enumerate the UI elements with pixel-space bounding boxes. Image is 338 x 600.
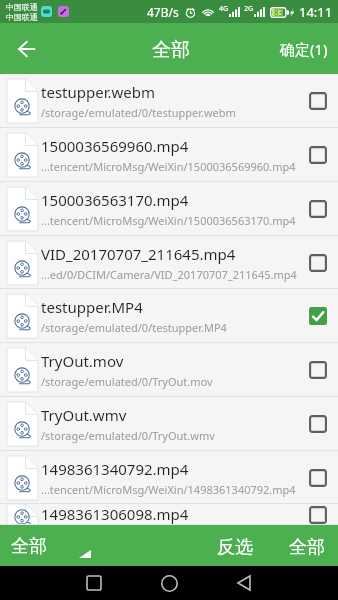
staticText: 中国联通 xyxy=(6,2,38,12)
button[interactable]: 全部 xyxy=(0,526,97,565)
button[interactable]: 反选 xyxy=(209,526,261,567)
staticText: TryOut.wmv xyxy=(41,405,127,425)
staticText: VID_20170707_211645.mp4 xyxy=(41,244,236,264)
staticText: /storage/emulated/0/testupper.webm xyxy=(41,105,236,120)
button[interactable]: 1498361306098.mp4 xyxy=(0,504,338,525)
staticText: 1500036563170.mp4 xyxy=(41,190,189,210)
button[interactable]: 全部 xyxy=(281,526,338,567)
button[interactable]: Home xyxy=(149,566,189,600)
staticText: 中国联通 xyxy=(6,12,38,22)
staticText: 2G xyxy=(244,4,254,14)
button[interactable]: Back xyxy=(8,31,44,67)
staticText: 全部 xyxy=(11,535,47,558)
staticText: /storage/emulated/0/TryOut.wmv xyxy=(41,428,215,443)
button[interactable]: 1500036563170.mp4 xyxy=(0,182,338,236)
staticText: ...tencent/MicroMsg/WeiXin/1500036563170… xyxy=(41,213,296,228)
staticText: 确定(1) xyxy=(280,39,328,59)
staticText: 1500036569960.mp4 xyxy=(41,136,189,156)
button[interactable]: 1498361340792.mp4 xyxy=(0,451,338,504)
button[interactable]: testupper.MP4 xyxy=(0,289,338,343)
button[interactable]: TryOut.mov xyxy=(0,343,338,397)
staticText: 全部 xyxy=(289,536,325,557)
staticText: /storage/emulated/0/TryOut.mov xyxy=(41,374,213,389)
staticText: /storage/emulated/0/testupper.MP4 xyxy=(41,320,227,335)
button[interactable]: TryOut.wmv xyxy=(0,397,338,451)
button[interactable]: 确定(1) xyxy=(270,27,338,71)
staticText: 1498361306098.mp4 xyxy=(41,504,189,524)
staticText: testupper.webm xyxy=(41,82,155,102)
staticText: testupper.MP4 xyxy=(41,297,143,317)
staticText: 14:11 xyxy=(299,3,333,21)
button[interactable]: Back xyxy=(224,566,264,600)
button[interactable]: Recent apps xyxy=(74,566,114,600)
staticText: ...tencent/MicroMsg/WeiXin/1498361340792… xyxy=(41,482,296,497)
staticText: 83 xyxy=(274,7,284,18)
staticText: ...tencent/MicroMsg/WeiXin/1500036569960… xyxy=(41,159,296,174)
staticText: 全部 xyxy=(152,38,190,62)
staticText: TryOut.mov xyxy=(41,351,124,371)
button[interactable]: testupper.webm xyxy=(0,74,338,128)
staticText: 反选 xyxy=(217,536,253,557)
button[interactable]: 1500036569960.mp4 xyxy=(0,128,338,182)
staticText: 47B/s xyxy=(147,4,179,20)
button[interactable]: VID_20170707_211645.mp4 xyxy=(0,236,338,289)
staticText: 1498361340792.mp4 xyxy=(41,459,189,479)
staticText: ...ed/0/DCIM/Camera/VID_20170707_211645.… xyxy=(41,267,297,282)
staticText: 4G xyxy=(219,4,229,14)
